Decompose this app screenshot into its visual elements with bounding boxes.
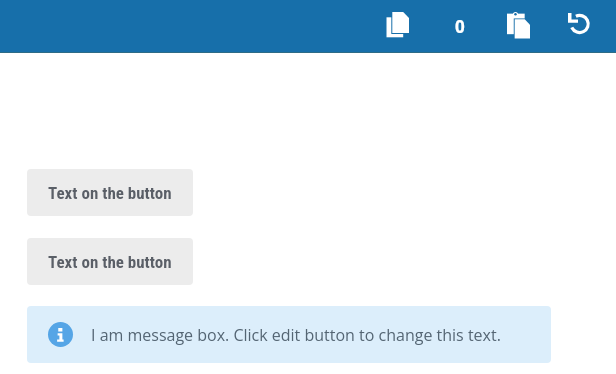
staticText: 0 xyxy=(455,15,465,38)
staticText: I am message box. Click edit button to c… xyxy=(91,324,501,346)
staticText: Text on the button xyxy=(48,183,172,203)
button[interactable]: Copy xyxy=(375,0,421,52)
button[interactable]: Undo xyxy=(556,0,602,52)
button[interactable]: I am message box. Click edit button to c… xyxy=(27,306,551,363)
button[interactable]: Text on the button xyxy=(27,238,193,285)
button[interactable]: Paste xyxy=(495,0,541,52)
button[interactable]: Text on the button xyxy=(27,169,193,216)
staticText: Text on the button xyxy=(48,252,172,272)
